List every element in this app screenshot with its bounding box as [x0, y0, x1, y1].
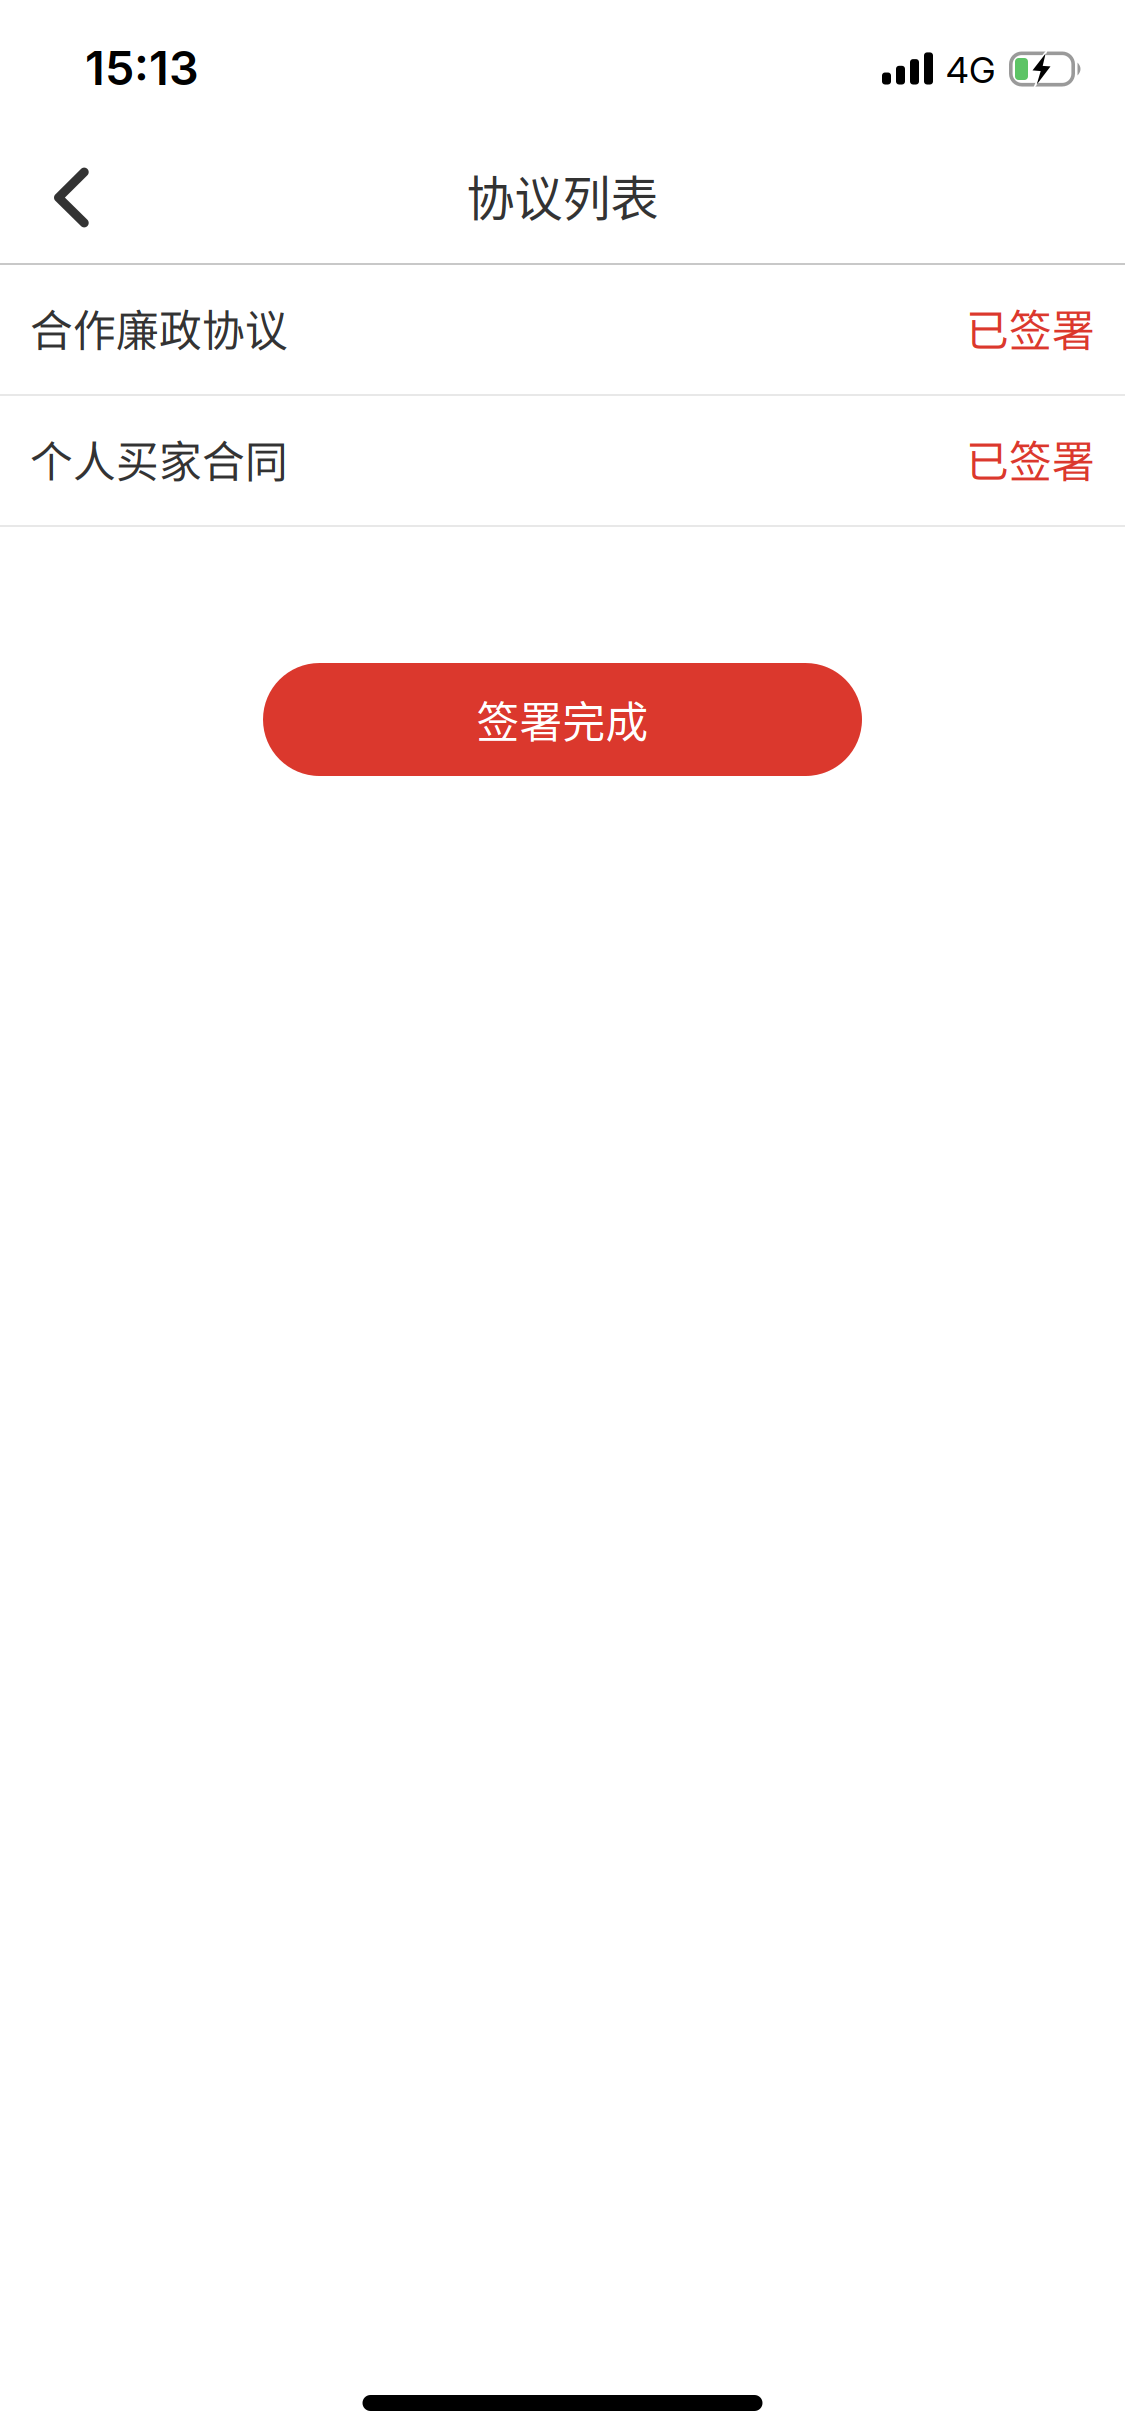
staticText: 协议列表 [466, 160, 658, 230]
staticText: 15:13 [85, 40, 199, 96]
button[interactable]: 签署完成 [263, 663, 862, 776]
button[interactable]: 返回 [0, 150, 129, 245]
staticText: 已签署 [966, 297, 1095, 359]
staticText: 合作廉政协议 [30, 297, 288, 359]
staticText: 个人买家合同 [30, 428, 288, 490]
button[interactable]: 合作廉政协议 [0, 265, 1125, 396]
staticText: 已签署 [966, 428, 1095, 490]
button[interactable]: 个人买家合同 [0, 396, 1125, 527]
staticText: 4G [946, 48, 995, 92]
staticText: 签署完成 [476, 689, 648, 750]
